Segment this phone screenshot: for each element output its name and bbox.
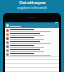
button[interactable] <box>5 48 59 52</box>
button[interactable] <box>5 52 59 56</box>
button[interactable]: Messages <box>5 23 59 28</box>
button[interactable] <box>5 28 59 32</box>
button[interactable] <box>5 32 59 36</box>
staticText: anywhere in the world <box>17 6 47 10</box>
button[interactable] <box>5 36 59 40</box>
staticText: Chat with anyone <box>19 1 46 5</box>
button[interactable] <box>5 44 59 48</box>
button[interactable] <box>5 40 59 44</box>
staticText: Messages <box>10 24 22 27</box>
